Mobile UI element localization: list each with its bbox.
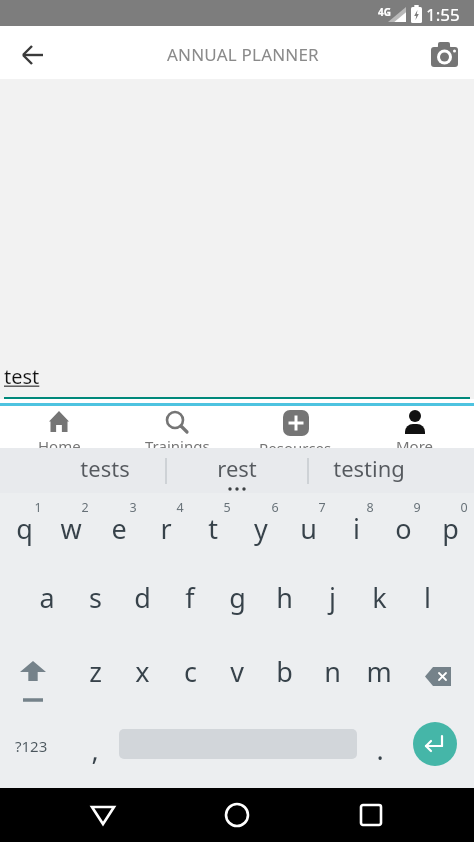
staticText: d	[134, 579, 151, 616]
staticText: 4	[176, 499, 184, 516]
staticText: 6	[271, 499, 279, 516]
staticText: 2	[81, 499, 89, 516]
staticText: 5	[223, 499, 231, 516]
staticText: x	[135, 653, 150, 690]
staticText: Trainings	[145, 436, 210, 448]
staticText: .	[376, 731, 384, 768]
staticText: ,	[91, 731, 99, 768]
staticText: y	[254, 510, 268, 547]
staticText: Resources	[259, 438, 332, 448]
staticText: testing	[333, 453, 405, 483]
staticText: s	[89, 579, 102, 616]
staticText: f	[185, 579, 195, 616]
staticText: v	[230, 653, 244, 690]
staticText: k	[372, 579, 387, 616]
staticText: g	[229, 579, 246, 616]
staticText: 7	[318, 499, 326, 516]
staticText: ANNUAL PLANNER	[167, 43, 319, 66]
staticText: n	[324, 653, 341, 690]
staticText: More	[396, 436, 434, 448]
staticText: u	[300, 510, 317, 547]
staticText: test	[4, 363, 40, 390]
staticText: q	[16, 510, 33, 547]
staticText: Home	[38, 436, 81, 448]
staticText: ?123	[15, 736, 48, 756]
staticText: l	[424, 579, 431, 616]
staticText: 9	[413, 499, 421, 516]
staticText: z	[89, 653, 102, 690]
staticText: c	[184, 653, 197, 690]
staticText: j	[329, 579, 336, 616]
staticText: 8	[366, 499, 374, 516]
staticText: b	[276, 653, 293, 690]
staticText: 1:55	[426, 3, 460, 26]
staticText: e	[111, 510, 127, 547]
staticText: a	[39, 579, 55, 616]
staticText: rest	[217, 453, 257, 483]
staticText: w	[60, 510, 82, 547]
staticText: t	[208, 510, 218, 547]
staticText: 4G	[378, 5, 391, 19]
staticText: tests	[80, 453, 130, 483]
staticText: 3	[129, 499, 137, 516]
staticText: h	[276, 579, 293, 616]
staticText: i	[353, 510, 360, 547]
staticText: m	[366, 653, 392, 690]
staticText: 0	[460, 499, 468, 516]
staticText: 1	[34, 499, 42, 516]
staticText: o	[395, 510, 412, 547]
staticText: r	[160, 510, 172, 547]
staticText: p	[442, 510, 459, 547]
